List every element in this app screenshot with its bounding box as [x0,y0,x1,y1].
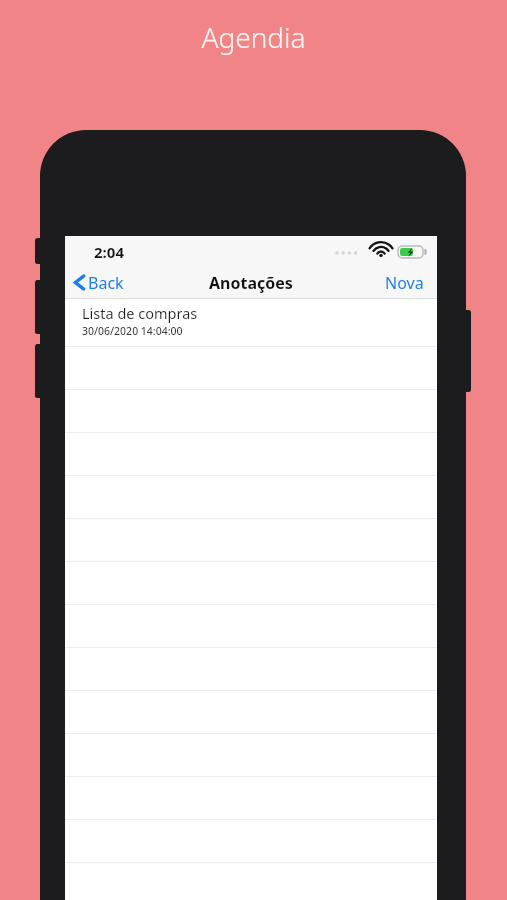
staticText: Back [88,272,124,294]
staticText: 30/06/2020 14:04:00 [82,324,183,338]
button[interactable]: Back [65,267,134,298]
staticText: Anotações [209,272,293,294]
button[interactable]: Lista de compras [65,299,437,346]
button[interactable]: Nova [372,267,437,298]
other: Back [74,274,85,291]
staticText: Agendia [201,18,306,56]
staticText: Nova [385,272,424,294]
staticText: 2:04 [94,242,124,262]
staticText: Lista de compras [82,303,198,323]
